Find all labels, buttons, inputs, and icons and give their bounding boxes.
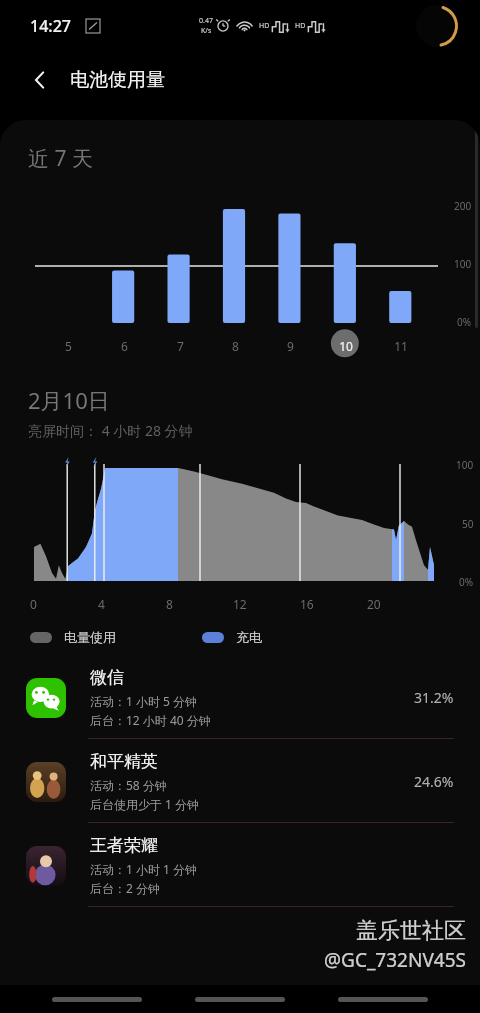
staticText: 14:27 (30, 15, 71, 37)
staticText: 后台：12 小时 40 分钟 (90, 712, 211, 728)
staticText: 活动：58 分钟 (90, 777, 167, 793)
staticText: 4 (98, 596, 105, 612)
button[interactable]: 返回 (18, 58, 62, 102)
staticText: 200 (454, 199, 472, 213)
button[interactable]: 微信 (0, 655, 480, 739)
staticText: 2月10日 (28, 385, 110, 415)
staticText: 电量使用 (64, 629, 116, 645)
staticText: 近 7 天 (28, 144, 93, 173)
staticText: 11 (394, 338, 408, 354)
staticText: 后台使用少于 1 分钟 (90, 796, 200, 812)
staticText: 活动：1 小时 1 分钟 (90, 861, 198, 877)
staticText: 8 (166, 596, 173, 612)
staticText: 12 (233, 596, 247, 612)
staticText: 亮屏时间： 4 小时 28 分钟 (28, 421, 193, 440)
staticText: 100 (454, 257, 472, 271)
staticText: 50 (462, 517, 474, 531)
staticText: 和平精英 (90, 751, 158, 772)
button[interactable]: 导航按钮 (194, 988, 286, 1010)
staticText: 5 (65, 338, 72, 354)
staticText: 7 (177, 338, 184, 354)
staticText: 0% (457, 315, 472, 329)
staticText: HD (259, 21, 270, 31)
staticText: 20 (367, 596, 381, 612)
staticText: 10 (339, 338, 353, 354)
staticText: 31.2% (414, 688, 454, 707)
button[interactable]: 导航按钮 (337, 988, 429, 1010)
staticText: @GC_732NV45S (324, 947, 466, 973)
staticText: 活动：1 小时 5 分钟 (90, 693, 198, 709)
button[interactable]: 王者荣耀 (0, 823, 480, 907)
staticText: 后台：2 分钟 (90, 880, 160, 896)
staticText: 16 (300, 596, 314, 612)
staticText: 100 (456, 458, 474, 472)
staticText: 9 (287, 338, 294, 354)
staticText: 王者荣耀 (90, 835, 158, 856)
staticText: 8 (232, 338, 239, 354)
staticText: HD (295, 21, 306, 31)
staticText: 盖乐世社区 (356, 917, 466, 945)
button[interactable]: 导航按钮 (51, 988, 143, 1010)
button[interactable]: 2月10日 (0, 363, 480, 617)
staticText: 0% (459, 575, 474, 589)
staticText: 充电 (236, 629, 262, 645)
staticText: 0 (30, 596, 37, 612)
staticText: 0.47 (199, 16, 213, 26)
button[interactable]: 和平精英 (0, 739, 480, 823)
staticText: K/s (201, 26, 212, 36)
staticText: 电池使用量 (70, 68, 165, 92)
staticText: 24.6% (414, 772, 454, 791)
staticText: 6 (121, 338, 128, 354)
staticText: 微信 (90, 667, 124, 688)
button[interactable]: 近 7 天 (0, 120, 480, 363)
